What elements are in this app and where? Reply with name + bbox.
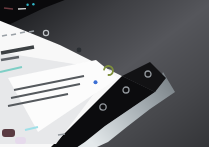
button[interactable]: Phone on desk bbox=[0, 0, 209, 147]
